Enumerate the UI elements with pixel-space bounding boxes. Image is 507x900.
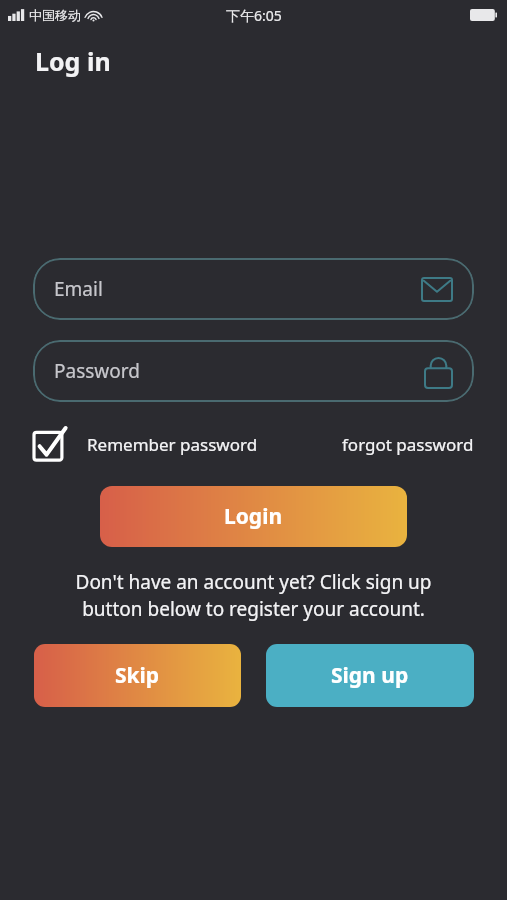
staticText: Remember password xyxy=(87,433,258,456)
staticText: Skip xyxy=(115,661,160,690)
button[interactable]: Email xyxy=(33,258,474,320)
staticText: Password xyxy=(54,358,140,384)
staticText: Login xyxy=(224,502,283,531)
other: Email xyxy=(422,278,452,301)
button[interactable]: Skip xyxy=(34,644,241,707)
button[interactable]: Remember password xyxy=(34,428,264,461)
button[interactable]: Login xyxy=(100,486,407,547)
other: Password xyxy=(425,355,452,388)
staticText: 下午6:05 xyxy=(226,6,282,25)
button[interactable]: forgot password xyxy=(342,433,474,456)
staticText: Don't have an account yet? Click sign up… xyxy=(22,569,485,622)
button[interactable]: Password xyxy=(33,340,474,402)
staticText: 中国移动 xyxy=(29,7,81,23)
staticText: Sign up xyxy=(331,661,409,690)
staticText: Log in xyxy=(35,44,111,78)
staticText: Email xyxy=(54,276,103,302)
button[interactable]: Sign up xyxy=(266,644,474,707)
other: Remember password xyxy=(34,428,65,461)
